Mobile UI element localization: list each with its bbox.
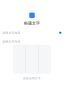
staticText: 底部说明文字: [23, 77, 41, 80]
staticText: 说明文字内容: [3, 31, 21, 34]
staticText: 说明文字内容: [3, 40, 21, 43]
staticText: 标题文字: [24, 21, 40, 26]
